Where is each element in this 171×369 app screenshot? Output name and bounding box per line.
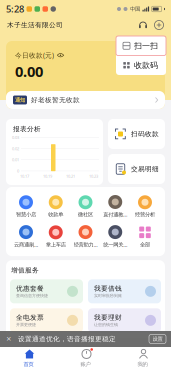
button[interactable]: 收款单: [42, 195, 70, 218]
staticText: 我要借钱: [94, 285, 122, 293]
staticText: 首页: [23, 361, 33, 368]
staticText: 开票更便捷: [16, 322, 36, 327]
button[interactable]: 优惠套餐: [10, 279, 83, 303]
staticText: 掌上车店: [46, 241, 66, 248]
button[interactable]: 我的: [114, 347, 171, 368]
button[interactable]: 直付通教…: [101, 195, 129, 218]
button[interactable]: 我要借钱: [88, 279, 161, 303]
staticText: 实时审批秒到账: [94, 293, 122, 298]
staticText: 好老板暂无收款: [31, 96, 80, 104]
staticText: 经营助力…: [73, 241, 97, 248]
button[interactable]: 客服: [135, 18, 151, 32]
staticText: 设置通道优化，语音播报更稳定: [18, 335, 116, 343]
staticText: 0.00: [15, 62, 43, 81]
button[interactable]: 全部: [131, 225, 159, 248]
staticText: ✕: [6, 335, 12, 343]
button[interactable]: 微社区: [71, 195, 99, 218]
staticText: 收款码: [134, 60, 158, 70]
staticText: 木子生活有限公司: [7, 21, 63, 29]
staticText: 增值服务: [11, 266, 39, 274]
staticText: 账户: [80, 361, 90, 368]
staticText: 智慧小店: [16, 211, 36, 218]
button[interactable]: 通知: [6, 91, 165, 109]
button[interactable]: 掌上车店: [42, 225, 70, 248]
button[interactable]: 添加: [151, 18, 167, 32]
button[interactable]: 交易明细: [108, 154, 165, 184]
button[interactable]: 报表分析: [6, 119, 103, 185]
staticText: 今日收款(元): [15, 51, 54, 60]
staticText: 10-23: [89, 173, 98, 179]
button[interactable]: 经营分析: [131, 195, 159, 218]
staticText: 通知: [15, 97, 25, 103]
staticText: 5:28: [6, 3, 24, 15]
staticText: 直付通教…: [103, 211, 127, 218]
staticText: 交易明细: [131, 165, 159, 173]
staticText: 0.02: [12, 146, 19, 151]
staticText: 全部: [140, 241, 150, 248]
button[interactable]: 全电发票: [10, 308, 83, 332]
staticText: 中国: [130, 6, 140, 12]
staticText: 10-17: [20, 173, 29, 179]
button[interactable]: 首页: [0, 347, 57, 368]
staticText: 查询信息方便快捷: [16, 293, 48, 298]
button[interactable]: 我要理财: [88, 308, 161, 332]
staticText: 设置: [152, 336, 162, 342]
staticText: 全电发票: [16, 314, 44, 322]
staticText: 扫一扫: [134, 41, 158, 51]
button[interactable]: 收款码: [116, 55, 166, 75]
button[interactable]: 账户: [57, 347, 114, 368]
staticText: 统一网关…: [103, 241, 127, 248]
staticText: 0.03: [12, 135, 19, 140]
button[interactable]: 经营助力…: [71, 225, 99, 248]
staticText: 优惠套餐: [16, 285, 44, 293]
staticText: 0.01: [12, 157, 19, 162]
staticText: 微社区: [78, 211, 93, 218]
staticText: 10-21: [66, 173, 75, 179]
staticText: 经营分析: [135, 211, 155, 218]
button[interactable]: 扫码收款: [108, 119, 165, 149]
staticText: 收款单: [48, 211, 63, 218]
button[interactable]: 关闭: [5, 334, 13, 344]
staticText: 0: [17, 168, 19, 174]
staticText: 扫码收款: [131, 130, 159, 138]
staticText: 报表分析: [13, 125, 41, 133]
button[interactable]: 扫一扫: [116, 36, 166, 55]
staticText: 云商通刷…: [14, 241, 38, 248]
button[interactable]: 智慧小店: [12, 195, 40, 218]
staticText: 我要理财: [94, 314, 122, 322]
staticText: 让您的钱生钱: [94, 322, 118, 327]
staticText: 我的: [137, 361, 147, 368]
button[interactable]: 统一网关…: [101, 225, 129, 248]
button[interactable]: 云商通刷…: [12, 225, 40, 248]
button[interactable]: 设置: [149, 334, 166, 343]
staticText: 10-19: [43, 173, 52, 179]
